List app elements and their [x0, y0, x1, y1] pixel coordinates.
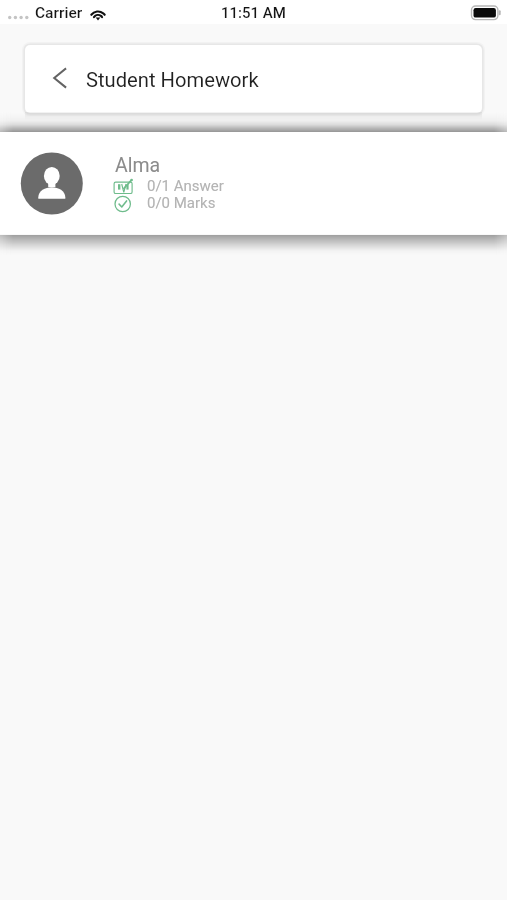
staticText: Student Homework — [86, 68, 259, 92]
staticText: Alma — [115, 154, 161, 177]
staticText: 0/0 Marks — [147, 194, 216, 212]
button[interactable]: Back — [37, 57, 81, 101]
staticText: Carrier — [35, 4, 83, 22]
staticText: 11:51 AM — [0, 4, 507, 22]
staticText: 0/1 Answer — [147, 177, 224, 195]
button[interactable]: Alma — [0, 132, 507, 234]
